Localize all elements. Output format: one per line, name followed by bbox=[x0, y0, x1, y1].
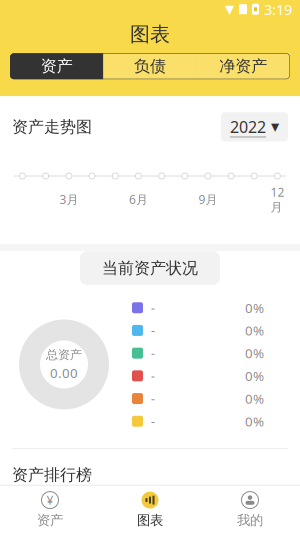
staticText: - bbox=[151, 368, 155, 384]
button[interactable]: 净资产 bbox=[197, 53, 290, 79]
staticText: 0% bbox=[245, 367, 264, 385]
staticText: 0% bbox=[245, 390, 264, 407]
staticText: 2022 bbox=[230, 116, 266, 137]
button[interactable]: 负债 bbox=[103, 53, 197, 79]
staticText: 总资产 bbox=[46, 347, 82, 362]
staticText: 图表 bbox=[137, 512, 163, 528]
staticText: 0% bbox=[245, 322, 264, 339]
button[interactable]: 我的 bbox=[200, 486, 300, 533]
button[interactable]: 图表 bbox=[100, 486, 200, 533]
staticText: 0% bbox=[245, 299, 264, 317]
staticText: 我的 bbox=[237, 512, 263, 528]
staticText: 净资产 bbox=[219, 56, 267, 76]
staticText: 12月 bbox=[270, 184, 284, 215]
staticText: 9月 bbox=[198, 191, 217, 207]
staticText: ¥ bbox=[46, 492, 53, 508]
staticText: 负债 bbox=[134, 56, 166, 76]
staticText: 0% bbox=[245, 344, 264, 362]
button[interactable]: 资产 bbox=[10, 53, 103, 79]
button[interactable]: ¥ bbox=[0, 486, 100, 533]
staticText: - bbox=[151, 300, 155, 316]
staticText: 资产走势图 bbox=[12, 117, 92, 137]
staticText: ▼ bbox=[225, 2, 234, 16]
staticText: 0% bbox=[245, 412, 264, 430]
staticText: 3月 bbox=[59, 191, 78, 207]
staticText: 资产 bbox=[37, 512, 63, 528]
staticText: - bbox=[151, 322, 155, 338]
staticText: 3:19 bbox=[264, 0, 292, 19]
staticText: - bbox=[151, 413, 155, 429]
staticText: 图表 bbox=[130, 22, 170, 46]
staticText: 0.00 bbox=[50, 364, 78, 382]
staticText: ▼ bbox=[271, 121, 279, 133]
staticText: 资产 bbox=[41, 56, 73, 76]
staticText: - bbox=[151, 391, 155, 406]
button[interactable]: 2022 bbox=[221, 112, 288, 141]
staticText: 当前资产状况 bbox=[102, 258, 198, 278]
staticText: - bbox=[151, 345, 155, 361]
staticText: 资产排行榜 bbox=[12, 465, 92, 485]
staticText: 6月 bbox=[129, 191, 148, 207]
